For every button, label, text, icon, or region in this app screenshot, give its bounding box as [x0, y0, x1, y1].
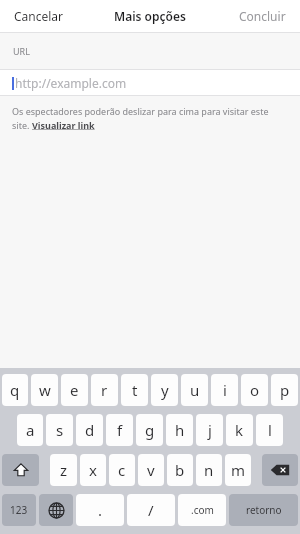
button[interactable]: m: [225, 454, 251, 486]
staticText: URL: [13, 45, 30, 57]
button[interactable]: w: [31, 374, 58, 406]
staticText: /: [148, 500, 154, 520]
button[interactable]: c: [109, 454, 135, 486]
staticText: d: [85, 420, 95, 440]
staticText: o: [250, 380, 260, 400]
staticText: s: [56, 420, 64, 440]
staticText: t: [132, 380, 138, 400]
staticText: b: [175, 460, 185, 480]
button[interactable]: k: [226, 414, 253, 446]
button[interactable]: h: [166, 414, 193, 446]
button[interactable]: 123: [2, 494, 36, 526]
button[interactable]: z: [50, 454, 77, 486]
staticText: m: [231, 460, 246, 480]
button[interactable]: u: [181, 374, 208, 406]
staticText: u: [190, 380, 200, 400]
staticText: q: [10, 380, 20, 400]
staticText: z: [60, 460, 68, 480]
button[interactable]: l: [256, 414, 283, 446]
staticText: Visualizar link: [32, 119, 95, 131]
staticText: Mais opções: [114, 8, 186, 24]
button[interactable]: v: [138, 454, 164, 486]
staticText: x: [89, 460, 97, 480]
button[interactable]: Backspace: [262, 454, 298, 486]
staticText: c: [118, 460, 126, 480]
button[interactable]: retorno: [229, 494, 298, 526]
staticText: j: [208, 420, 212, 440]
button[interactable]: http://example.com: [0, 70, 300, 95]
staticText: Os espectadores poderão deslizar para ci…: [12, 105, 269, 117]
button[interactable]: d: [76, 414, 103, 446]
staticText: Concluir: [239, 8, 286, 24]
staticText: g: [145, 420, 155, 440]
button[interactable]: i: [211, 374, 238, 406]
staticText: a: [26, 420, 35, 440]
button[interactable]: f: [106, 414, 133, 446]
button[interactable]: Shift: [2, 454, 39, 486]
button[interactable]: /: [127, 494, 175, 526]
staticText: w: [39, 380, 51, 400]
staticText: http://example.com: [15, 75, 127, 91]
button[interactable]: q: [2, 374, 28, 406]
button[interactable]: g: [136, 414, 163, 446]
button[interactable]: r: [91, 374, 118, 406]
staticText: e: [70, 380, 79, 400]
button[interactable]: x: [80, 454, 106, 486]
staticText: p: [280, 380, 290, 400]
staticText: retorno: [246, 503, 282, 517]
staticText: i: [223, 380, 227, 400]
staticText: Cancelar: [14, 8, 64, 24]
staticText: 123: [10, 503, 28, 517]
staticText: .com: [191, 503, 214, 517]
button[interactable]: j: [196, 414, 223, 446]
staticText: v: [147, 460, 155, 480]
staticText: l: [268, 420, 272, 440]
staticText: k: [235, 420, 244, 440]
button[interactable]: Change keyboard language: [39, 494, 73, 526]
button[interactable]: o: [241, 374, 268, 406]
button[interactable]: .: [76, 494, 124, 526]
staticText: h: [175, 420, 185, 440]
button[interactable]: e: [61, 374, 88, 406]
button[interactable]: a: [17, 414, 43, 446]
staticText: .: [98, 500, 103, 520]
staticText: r: [101, 380, 108, 400]
button[interactable]: y: [151, 374, 178, 406]
button[interactable]: .com: [178, 494, 226, 526]
staticText: n: [204, 460, 214, 480]
button[interactable]: n: [196, 454, 222, 486]
staticText: y: [161, 380, 169, 400]
staticText: f: [117, 420, 123, 440]
button[interactable]: p: [271, 374, 298, 406]
button[interactable]: t: [121, 374, 148, 406]
staticText: site.: [12, 119, 32, 131]
button[interactable]: Visualizar link: [32, 119, 95, 131]
button[interactable]: Cancelar: [0, 2, 78, 30]
button[interactable]: Concluir: [225, 2, 300, 30]
button[interactable]: s: [46, 414, 73, 446]
button[interactable]: b: [167, 454, 193, 486]
